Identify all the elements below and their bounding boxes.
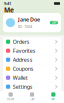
staticText: Cart — [29, 97, 34, 101]
staticText: Me — [51, 97, 55, 101]
staticText: Settings — [13, 83, 33, 90]
button[interactable]: Me — [43, 91, 64, 102]
staticText: Favorites — [13, 47, 36, 54]
staticText: VIP — [51, 20, 56, 25]
staticText: Jane Doe — [18, 16, 40, 23]
button[interactable]: Wallet — [3, 73, 61, 82]
button[interactable]: Cart — [21, 91, 43, 102]
staticText: Orders — [13, 38, 30, 45]
staticText: 9:41 — [4, 1, 11, 6]
button[interactable]: Home — [0, 91, 21, 102]
staticText: Coupons — [13, 65, 34, 72]
button[interactable]: Settings — [3, 82, 61, 91]
button[interactable]: Jane Doe — [3, 13, 61, 32]
staticText: Home — [7, 97, 15, 101]
staticText: Address — [13, 56, 33, 63]
button[interactable]: Favorites — [3, 46, 61, 55]
button[interactable]: Address — [3, 55, 61, 64]
staticText: Wallet — [13, 74, 28, 81]
staticText: ID: 1024 — [18, 24, 32, 29]
button[interactable]: Coupons — [3, 64, 61, 73]
button[interactable]: Orders — [3, 37, 61, 46]
staticText: Me — [4, 6, 14, 14]
